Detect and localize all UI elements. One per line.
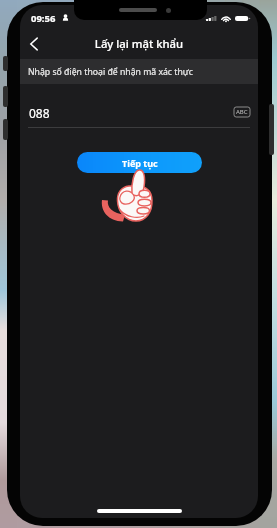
button[interactable]: Back xyxy=(22,32,46,56)
staticText: Nhập số điện thoại để nhận mã xác thực xyxy=(28,66,193,78)
staticText: Lấy lại mật khẩu xyxy=(20,36,258,51)
button[interactable]: Tiếp tục xyxy=(77,152,202,173)
staticText: Tiếp tục xyxy=(122,157,158,169)
staticText: 09:56 xyxy=(31,12,56,25)
staticText: ABC xyxy=(236,108,248,116)
staticText: 088 xyxy=(29,105,50,121)
